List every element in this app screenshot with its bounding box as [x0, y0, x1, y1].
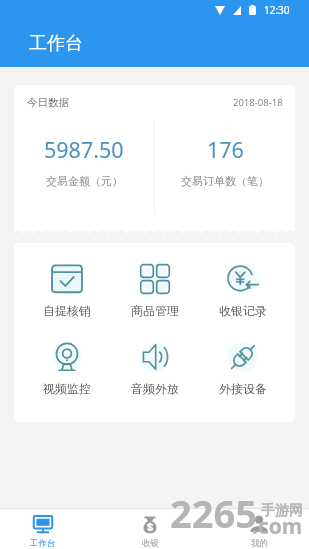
- staticText: 收银: [142, 538, 159, 549]
- staticText: 视频监控: [43, 381, 91, 396]
- button[interactable]: 商品管理: [111, 262, 199, 318]
- staticText: 交易金额（元）: [46, 174, 123, 188]
- button[interactable]: 收银: [116, 509, 184, 549]
- staticText: 交易订单数（笔）: [181, 174, 269, 188]
- staticText: 收银记录: [219, 303, 267, 318]
- staticText: 自提核销: [43, 303, 91, 318]
- button[interactable]: 视频监控: [22, 340, 111, 396]
- staticText: 今日数据: [27, 96, 69, 109]
- staticText: 5987.50: [44, 135, 124, 164]
- staticText: 我的: [251, 538, 268, 549]
- staticText: 手游网: [261, 502, 303, 520]
- staticText: 音频外放: [131, 381, 179, 396]
- staticText: 176: [207, 135, 244, 164]
- button[interactable]: 我的: [225, 509, 293, 549]
- staticText: 2265: [170, 487, 257, 539]
- button[interactable]: 工作台: [9, 509, 77, 549]
- staticText: .com: [252, 512, 303, 541]
- button[interactable]: 外接设备: [199, 340, 287, 396]
- staticText: 12:30: [264, 3, 290, 17]
- staticText: 工作台: [29, 32, 83, 55]
- staticText: 商品管理: [131, 303, 179, 318]
- button[interactable]: 自提核销: [22, 262, 111, 318]
- button[interactable]: 音频外放: [111, 340, 199, 396]
- staticText: 工作台: [30, 538, 56, 549]
- staticText: 2018-08-18: [233, 96, 283, 109]
- staticText: 外接设备: [219, 381, 267, 396]
- button[interactable]: 收银记录: [199, 262, 287, 318]
